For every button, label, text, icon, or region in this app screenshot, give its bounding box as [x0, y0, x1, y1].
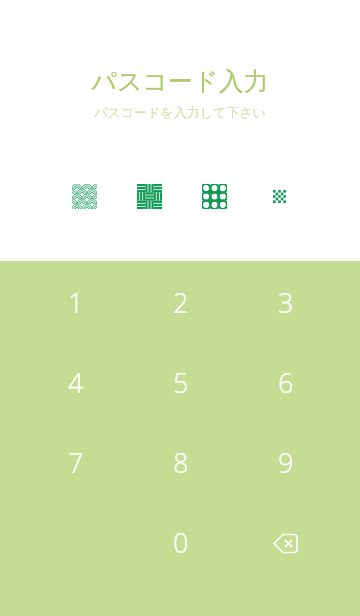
button[interactable]: 5: [128, 343, 233, 423]
staticText: 8: [173, 444, 189, 481]
staticText: パスコードを入力して下さい: [0, 104, 360, 120]
staticText: 3: [278, 284, 294, 321]
button[interactable]: Passcode mark 2: [137, 184, 162, 209]
button[interactable]: 8: [128, 423, 233, 503]
staticText: 1: [68, 284, 84, 321]
button[interactable]: Passcode mark 4: [267, 184, 292, 209]
staticText: 4: [68, 364, 84, 401]
button[interactable]: 6: [233, 343, 338, 423]
button[interactable]: Passcode mark 3: [202, 184, 227, 209]
staticText: パスコード入力: [0, 66, 360, 97]
staticText: 5: [173, 364, 189, 401]
staticText: 7: [68, 444, 84, 481]
button[interactable]: Passcode mark 1: [72, 184, 97, 209]
button[interactable]: 4: [23, 343, 128, 423]
button[interactable]: 9: [233, 423, 338, 503]
button[interactable]: 3: [233, 263, 338, 343]
staticText: 6: [278, 364, 294, 401]
button[interactable]: 0: [128, 503, 233, 583]
staticText: 2: [173, 284, 189, 321]
staticText: 0: [173, 524, 189, 561]
button[interactable]: 2: [128, 263, 233, 343]
button[interactable]: Delete: [233, 503, 338, 583]
staticText: 9: [278, 444, 294, 481]
button[interactable]: 1: [23, 263, 128, 343]
button[interactable]: 7: [23, 423, 128, 503]
